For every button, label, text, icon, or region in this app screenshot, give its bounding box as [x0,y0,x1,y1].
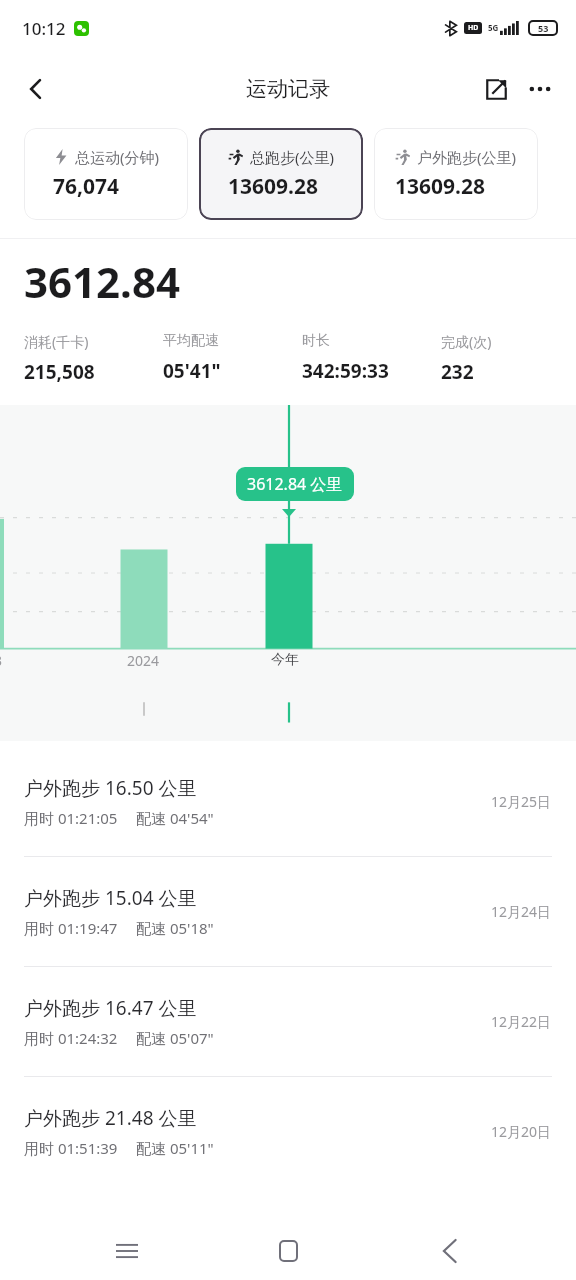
button[interactable]: 总跑步(公里) [199,128,363,220]
staticText: 53 [538,22,549,34]
staticText: 总运动(分钟) [75,147,160,167]
button[interactable]: 户外跑步 15.04 公里 [0,857,576,966]
staticText: 2024 [127,651,160,670]
staticText: 12月22日 [491,1012,552,1031]
button[interactable]: More options [518,67,562,111]
staticText: 户外跑步 16.50 公里 [24,775,197,801]
staticText: 今年 [271,651,299,669]
staticText: 配速 04'54" [136,808,214,828]
staticText: 13609.28 [228,172,318,201]
button[interactable]: Share [474,67,518,111]
staticText: 215,508 [24,359,95,385]
staticText: 平均配速 [163,332,219,350]
staticText: 总跑步(公里) [250,147,335,167]
staticText: 23 [0,651,3,670]
staticText: 12月24日 [491,902,552,921]
staticText: 3612.84 [24,253,180,310]
button[interactable]: 户外跑步(公里) [374,128,538,220]
staticText: 用时 01:51:39 [24,1138,118,1158]
staticText: 时长 [302,332,330,350]
staticText: 运动记录 [246,76,330,102]
button[interactable]: 总运动(分钟) [24,128,188,220]
staticText: 3612.84 公里 [247,473,343,495]
staticText: 232 [441,359,474,385]
staticText: 5G [488,22,499,33]
staticText: 用时 01:21:05 [24,808,118,828]
staticText: 户外跑步(公里) [417,147,517,167]
staticText: 342:59:33 [302,358,389,384]
button[interactable]: Back [415,1222,485,1280]
staticText: 完成(次) [441,332,492,351]
button[interactable]: Back [14,67,58,111]
button[interactable]: 户外跑步 16.50 公里 [0,747,576,856]
button[interactable]: Home [253,1222,323,1280]
staticText: 05'41" [163,358,221,384]
staticText: 配速 05'07" [136,1028,214,1048]
staticText: 配速 05'18" [136,918,214,938]
staticText: 配速 05'11" [136,1138,214,1158]
staticText: 户外跑步 16.47 公里 [24,995,197,1021]
button[interactable]: Recent apps [92,1222,162,1280]
staticText: 10:12 [22,17,66,40]
staticText: 户外跑步 21.48 公里 [24,1105,197,1131]
staticText: 76,074 [53,172,120,201]
staticText: 用时 01:19:47 [24,918,118,938]
staticText: HD [468,23,479,33]
staticText: 户外跑步 15.04 公里 [24,885,197,911]
staticText: 12月20日 [491,1122,552,1141]
button[interactable]: 户外跑步 21.48 公里 [0,1077,576,1186]
staticText: 用时 01:24:32 [24,1028,118,1048]
staticText: 13609.28 [395,172,485,201]
staticText: 消耗(千卡) [24,332,89,351]
button[interactable]: 户外跑步 16.47 公里 [0,967,576,1076]
staticText: 12月25日 [491,792,552,811]
